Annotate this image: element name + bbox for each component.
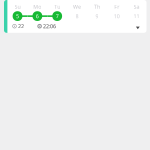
staticText: We bbox=[73, 3, 81, 10]
staticText: 11 bbox=[134, 13, 140, 20]
staticText: Th bbox=[94, 3, 100, 10]
staticText: 22 bbox=[18, 23, 24, 30]
staticText: 9 bbox=[95, 13, 98, 20]
staticText: 6 bbox=[36, 13, 39, 20]
staticText: Tu bbox=[54, 3, 60, 10]
staticText: Mo bbox=[33, 3, 41, 10]
button[interactable]: Su bbox=[4, 0, 146, 33]
staticText: 10 bbox=[114, 13, 120, 20]
staticText: 22:06 bbox=[43, 23, 56, 30]
staticText: 7 bbox=[56, 13, 59, 20]
staticText: Fr bbox=[114, 3, 119, 10]
staticText: Sa bbox=[134, 3, 140, 10]
staticText: 8 bbox=[76, 13, 79, 20]
staticText: Su bbox=[14, 3, 20, 10]
staticText: 5 bbox=[16, 13, 19, 20]
